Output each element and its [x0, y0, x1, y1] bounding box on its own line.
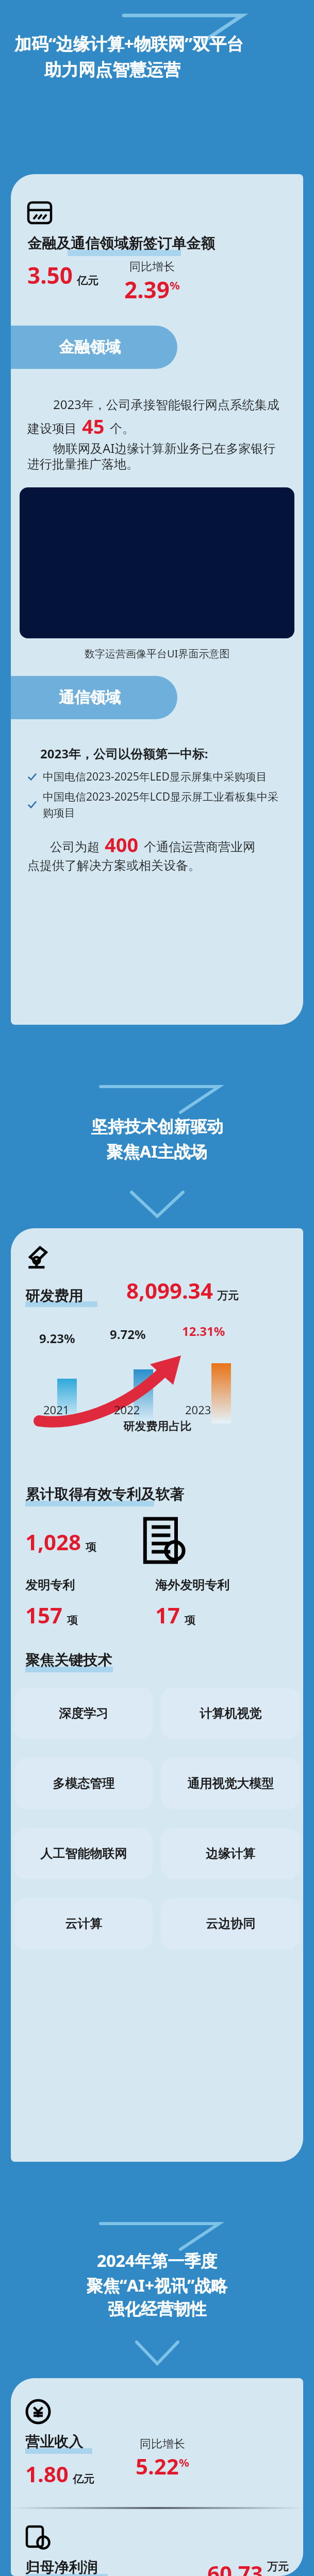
staticText: 2.39: [124, 274, 170, 305]
staticText: 云计算: [65, 1916, 102, 1931]
staticText: 项: [185, 1614, 195, 1627]
button[interactable]: 计算机视觉: [161, 1688, 300, 1739]
staticText: 亿元: [77, 274, 98, 287]
staticText: 坚持技术创新驱动: [91, 1116, 223, 1137]
staticText: 项: [86, 1540, 96, 1554]
staticText: 深度学习: [59, 1706, 108, 1721]
staticText: 2023年，公司以份额第一中标:: [27, 745, 208, 762]
staticText: 计算机视觉: [200, 1706, 261, 1721]
staticText: 45: [82, 413, 105, 439]
staticText: 5.22: [136, 2451, 179, 2481]
staticText: 建设项目: [27, 421, 77, 436]
staticText: 聚焦“AI+视讯”战略: [87, 2274, 228, 2297]
staticText: 个。: [110, 421, 135, 436]
staticText: 累计取得有效专利及软著: [25, 1485, 184, 1503]
staticText: 400: [105, 831, 139, 858]
button[interactable]: 边缘计算: [161, 1828, 300, 1879]
staticText: %: [170, 277, 180, 293]
button[interactable]: 深度学习: [14, 1688, 153, 1739]
staticText: 17: [155, 1600, 180, 1630]
staticText: 2022: [114, 1402, 140, 1417]
staticText: 万元: [267, 2560, 289, 2573]
staticText: 中国电信2023-2025年LED显示屏集中采购项目: [43, 769, 267, 784]
staticText: 9.72%: [110, 1326, 146, 1343]
staticText: 研发费用: [25, 1287, 83, 1305]
staticText: 点提供了解决方案或相关设备。: [27, 858, 201, 873]
staticText: 2021: [43, 1402, 70, 1417]
staticText: 金融领域: [59, 337, 121, 357]
staticText: 1,028: [25, 1527, 81, 1556]
staticText: 项: [67, 1614, 78, 1627]
staticText: 个通信运营商营业网: [144, 839, 255, 855]
staticText: 边缘计算: [206, 1846, 255, 1861]
staticText: 强化经营韧性: [108, 2299, 207, 2319]
staticText: 同比增长: [129, 260, 175, 274]
staticText: 海外发明专利: [155, 1578, 229, 1593]
button[interactable]: 云计算: [14, 1898, 153, 1950]
staticText: 发明专利: [25, 1578, 75, 1593]
staticText: 亿元: [73, 2472, 94, 2486]
staticText: %: [179, 2454, 189, 2470]
staticText: 3.50: [27, 260, 73, 291]
staticText: 进行批量推广落地。: [27, 456, 139, 472]
staticText: 加码“边缘计算+物联网”双平台: [14, 32, 244, 55]
staticText: 8,099.34: [126, 1276, 213, 1305]
staticText: 2023: [185, 1402, 211, 1417]
staticText: 助力网点智慧运营: [44, 59, 180, 81]
staticText: 营业收入: [25, 2433, 83, 2451]
staticText: 数字运营画像平台UI界面示意图: [85, 647, 230, 660]
staticText: 12.31%: [182, 1323, 225, 1340]
staticText: 人工智能物联网: [40, 1846, 127, 1861]
staticText: 物联网及AI边缘计算新业务已在多家银行: [27, 439, 276, 456]
staticText: 聚焦AI主战场: [107, 1140, 207, 1163]
staticText: 同比增长: [140, 2437, 185, 2451]
staticText: 1.80: [25, 2459, 69, 2488]
staticText: 万元: [217, 1289, 239, 1302]
staticText: 9.23%: [39, 1330, 75, 1347]
staticText: 2023年，公司承接智能银行网点系统集成: [27, 396, 279, 413]
button[interactable]: 云边协同: [161, 1898, 300, 1950]
staticText: 60.73: [207, 2558, 263, 2576]
button[interactable]: 人工智能物联网: [14, 1828, 153, 1879]
staticText: 多模态管理: [53, 1776, 114, 1791]
staticText: 中国电信2023-2025年LCD显示屏工业看板集中采购项目: [43, 789, 287, 820]
button[interactable]: 金融领域: [11, 326, 177, 369]
staticText: 金融及通信领域新签订单金额: [27, 234, 215, 252]
staticText: 157: [25, 1600, 63, 1630]
staticText: 归母净利润: [25, 2558, 97, 2576]
button[interactable]: 通用视觉大模型: [161, 1758, 300, 1809]
staticText: 公司为超: [50, 839, 100, 855]
button[interactable]: 通信领域: [11, 676, 177, 719]
staticText: 2024年第一季度: [97, 2249, 218, 2272]
staticText: 研发费用占比: [123, 1419, 191, 1434]
staticText: 通用视觉大模型: [187, 1776, 274, 1791]
staticText: 通信领域: [59, 688, 121, 707]
staticText: 云边协同: [206, 1916, 255, 1931]
staticText: 聚焦关键技术: [25, 1651, 112, 1669]
button[interactable]: 多模态管理: [14, 1758, 153, 1809]
